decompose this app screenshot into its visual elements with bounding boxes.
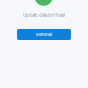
staticText: Update data berhasil [23, 12, 65, 18]
staticText: Kembali [36, 32, 52, 37]
button[interactable]: Kembali [17, 29, 71, 40]
